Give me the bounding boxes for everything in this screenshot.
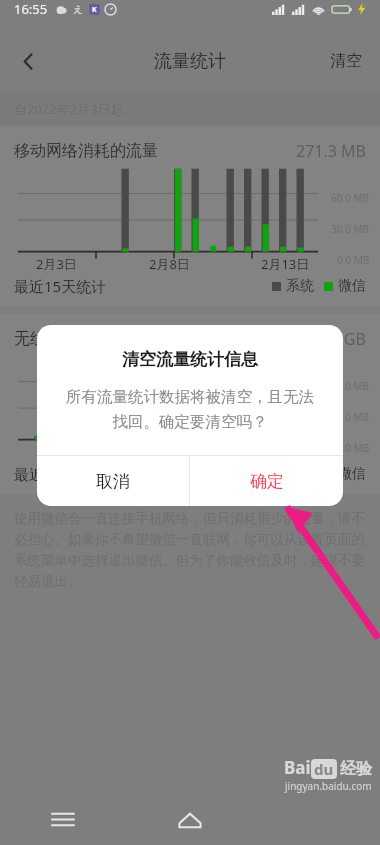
staticText: 所有流量统计数据将被清空，且无法找回。确定要清空吗？ — [59, 387, 321, 431]
staticText: 经验 — [340, 759, 372, 779]
staticText: 清空流量统计信息 — [122, 349, 258, 370]
staticText: du — [314, 759, 334, 779]
staticText: 2月3日 — [36, 443, 77, 461]
staticText: 清空 — [330, 51, 362, 71]
button[interactable]: Recent apps — [0, 793, 126, 845]
staticText: 微信 — [338, 465, 366, 483]
staticText: 流量统计 — [154, 50, 226, 73]
staticText: 2月8日 — [149, 443, 190, 461]
staticText: 0.0 MB — [337, 441, 370, 455]
staticText: 移动网络消耗的流量 — [14, 141, 158, 161]
staticText: 16:55 — [14, 0, 48, 18]
staticText: 2月8日 — [149, 255, 190, 273]
staticText: え — [73, 3, 84, 16]
staticText: 30.0 MB — [331, 222, 370, 236]
staticText: 无线网络消耗的流量 — [14, 329, 158, 349]
staticText: 2月13日 — [261, 443, 310, 461]
staticText: 60.0 MB — [331, 379, 370, 393]
staticText: 最近15天统计 — [14, 276, 107, 296]
staticText: 确定 — [250, 471, 284, 492]
staticText: 取消 — [96, 471, 130, 492]
staticText: 30.0 MB — [331, 410, 370, 424]
staticText: Bai — [284, 756, 311, 779]
button[interactable]: 取消 — [37, 456, 189, 506]
staticText: 使用微信会一直连接手机网络，但只消耗很少的流量，请不必担心。如果你不希望微信一直… — [14, 510, 366, 590]
staticText: 2月13日 — [261, 255, 310, 273]
staticText: K — [92, 5, 97, 15]
button[interactable]: 确定 — [190, 456, 343, 506]
staticText: 271.3 MB — [296, 140, 366, 162]
staticText: jingyan.baidu.com — [285, 779, 372, 793]
staticText: 自2022年2月3日起: — [14, 100, 128, 118]
staticText: 1.5 GB — [317, 328, 366, 350]
staticText: 最近15天统计 — [14, 464, 107, 484]
staticText: 微信 — [338, 277, 366, 295]
button[interactable]: Home — [126, 793, 253, 845]
staticText: 60.0 MB — [331, 191, 370, 205]
staticText: 2月3日 — [36, 255, 77, 273]
button[interactable]: Back — [4, 37, 52, 85]
button[interactable]: 清空 — [318, 39, 374, 83]
staticText: 0.0 MB — [337, 253, 370, 267]
staticText: 系统 — [286, 277, 314, 295]
